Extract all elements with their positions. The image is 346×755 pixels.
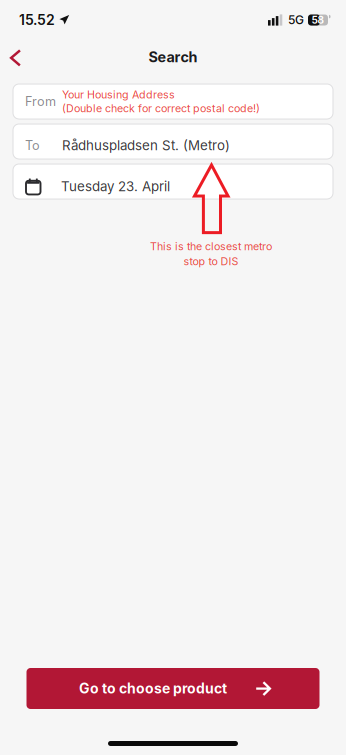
button[interactable]: Tuesday 23. April	[13, 164, 333, 199]
staticText: From	[25, 94, 56, 109]
staticText: To	[25, 138, 40, 153]
staticText: 5G	[288, 13, 304, 27]
staticText: Go to choose product	[79, 680, 227, 697]
button[interactable]: Go to choose product	[26, 668, 319, 709]
staticText: This is the closest metro	[150, 240, 272, 253]
staticText: Your Housing Address	[62, 88, 175, 101]
button[interactable]: From	[13, 84, 333, 119]
staticText: Rådhuspladsen St. (Metro)	[62, 137, 230, 153]
staticText: Tuesday 23. April	[61, 178, 170, 194]
staticText: stop to DIS	[183, 255, 238, 268]
staticText: 15.52	[19, 11, 55, 28]
staticText: 58	[311, 14, 324, 26]
staticText: Search	[148, 48, 197, 66]
button[interactable]: To	[13, 124, 333, 159]
staticText: (Double check for correct postal code!)	[62, 102, 260, 115]
button[interactable]: Back	[0, 41, 31, 73]
